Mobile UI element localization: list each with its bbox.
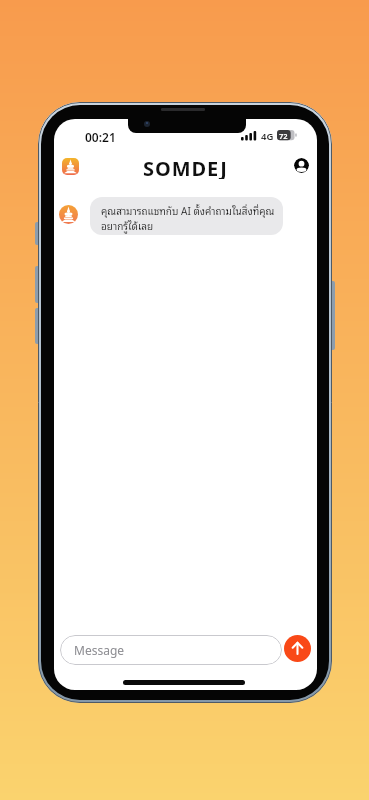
staticText: คุณสามารถแชทกับ AI ตั้งคำถามในสิ่งที่คุณ…: [101, 202, 275, 233]
staticText: SOMDEJ: [143, 155, 228, 179]
staticText: 00:21: [85, 129, 116, 145]
button[interactable]: [62, 158, 79, 175]
button[interactable]: Message: [60, 635, 282, 665]
button[interactable]: [294, 158, 309, 173]
staticText: Message: [74, 642, 125, 658]
staticText: 72: [279, 131, 288, 141]
button[interactable]: คุณสามารถแชทกับ AI ตั้งคำถามในสิ่งที่คุณ…: [90, 197, 283, 235]
staticText: 4G: [261, 130, 274, 143]
button[interactable]: [284, 635, 311, 662]
